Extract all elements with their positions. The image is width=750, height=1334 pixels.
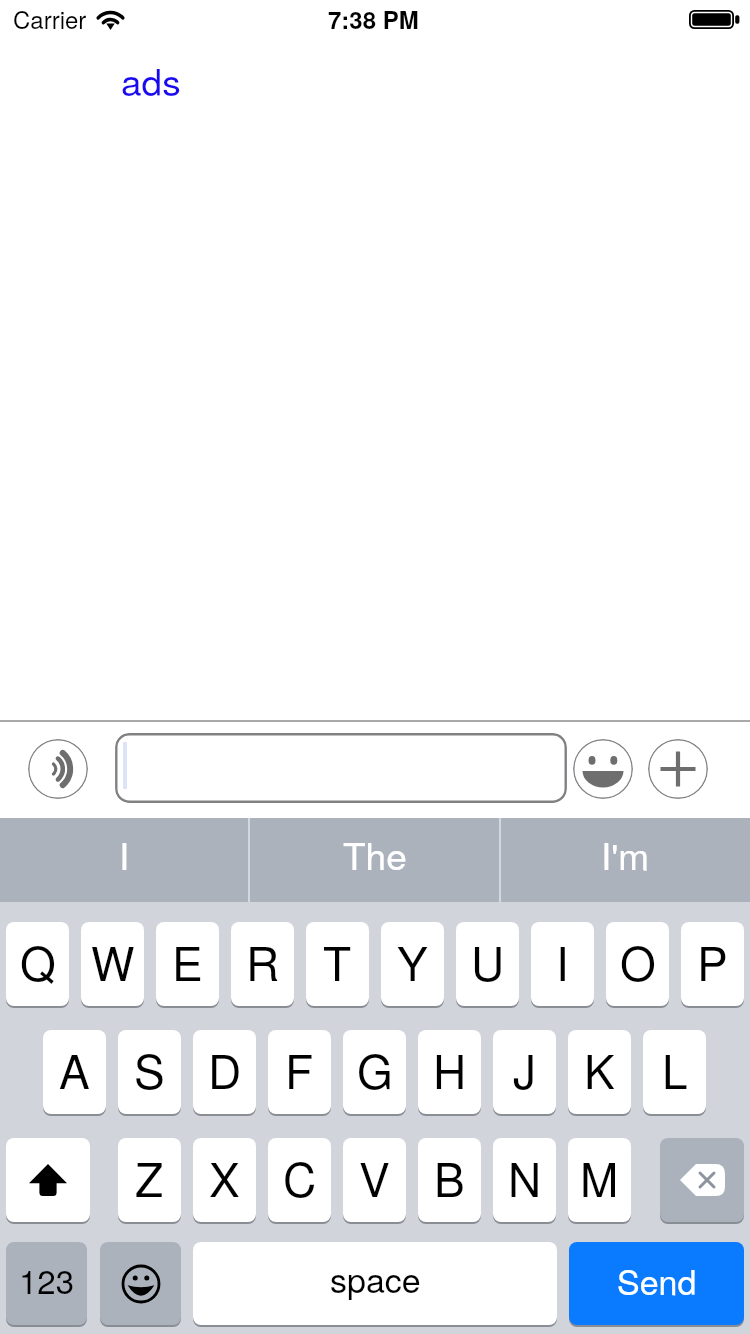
button[interactable]: P (681, 922, 744, 1006)
staticText: The (343, 828, 407, 881)
button[interactable]: space (193, 1242, 557, 1325)
button[interactable]: Z (118, 1138, 181, 1222)
staticText: Q (20, 928, 56, 994)
button[interactable]: F (268, 1030, 331, 1114)
button[interactable]: U (456, 922, 519, 1006)
button[interactable]: D (193, 1030, 256, 1114)
button[interactable] (660, 1138, 744, 1222)
staticText: I (556, 928, 569, 994)
button[interactable]: J (493, 1030, 556, 1114)
staticText: E (172, 928, 203, 994)
staticText: H (433, 1036, 467, 1102)
staticText: Z (135, 1144, 164, 1210)
staticText: L (662, 1036, 688, 1102)
button[interactable]: L (643, 1030, 706, 1114)
button[interactable]: I (0, 818, 248, 902)
button[interactable]: A (43, 1030, 106, 1114)
staticText: Y (397, 928, 428, 994)
staticText: S (134, 1036, 165, 1102)
staticText: 7:38 PM (328, 2, 419, 36)
staticText: R (246, 928, 280, 994)
staticText: B (434, 1144, 465, 1210)
staticText: M (580, 1144, 619, 1210)
staticText: X (209, 1144, 240, 1210)
staticText: space (330, 1254, 421, 1303)
button[interactable] (6, 1138, 90, 1222)
staticText: I (119, 828, 130, 881)
staticText: W (91, 928, 135, 994)
button[interactable]: N (493, 1138, 556, 1222)
button[interactable]: H (418, 1030, 481, 1114)
button[interactable]: V (343, 1138, 406, 1222)
button[interactable]: Emoji (573, 739, 633, 799)
button[interactable]: E (156, 922, 219, 1006)
button[interactable]: G (343, 1030, 406, 1114)
button[interactable]: R (231, 922, 294, 1006)
button[interactable]: X (193, 1138, 256, 1222)
staticText: P (697, 928, 728, 994)
button[interactable]: C (268, 1138, 331, 1222)
staticText: D (208, 1036, 242, 1102)
button[interactable] (115, 733, 567, 803)
staticText: J (513, 1036, 536, 1102)
button[interactable]: I (531, 922, 594, 1006)
button[interactable]: B (418, 1138, 481, 1222)
staticText: G (357, 1036, 393, 1102)
staticText: U (471, 928, 505, 994)
staticText: Carrier (13, 1, 87, 35)
button[interactable]: M (568, 1138, 631, 1222)
button[interactable]: Send (569, 1242, 744, 1325)
button[interactable]: Add attachment (648, 739, 708, 799)
staticText: A (59, 1036, 90, 1102)
button[interactable]: K (568, 1030, 631, 1114)
button[interactable]: S (118, 1030, 181, 1114)
button[interactable]: Q (6, 922, 69, 1006)
staticText: T (323, 928, 352, 994)
other: Backspace (660, 1138, 744, 1222)
staticText: V (359, 1144, 390, 1210)
staticText: K (584, 1036, 615, 1102)
staticText: 123 (19, 1256, 75, 1303)
button[interactable]: Y (381, 922, 444, 1006)
button[interactable]: I'm (501, 818, 750, 902)
button[interactable]: W (81, 922, 144, 1006)
staticText: C (283, 1144, 317, 1210)
staticText: ads (121, 54, 181, 107)
staticText: O (620, 928, 656, 994)
staticText: Send (617, 1256, 697, 1305)
staticText: F (285, 1036, 314, 1102)
button[interactable]: Audio message (28, 739, 88, 799)
button[interactable]: T (306, 922, 369, 1006)
other: Shift (6, 1138, 90, 1222)
button[interactable]: O (606, 922, 669, 1006)
other: Emoji keyboard (100, 1242, 181, 1325)
button[interactable]: The (250, 818, 499, 902)
staticText: I'm (601, 828, 650, 881)
button[interactable]: 123 (6, 1242, 87, 1325)
staticText: N (508, 1144, 542, 1210)
button[interactable] (100, 1242, 181, 1325)
